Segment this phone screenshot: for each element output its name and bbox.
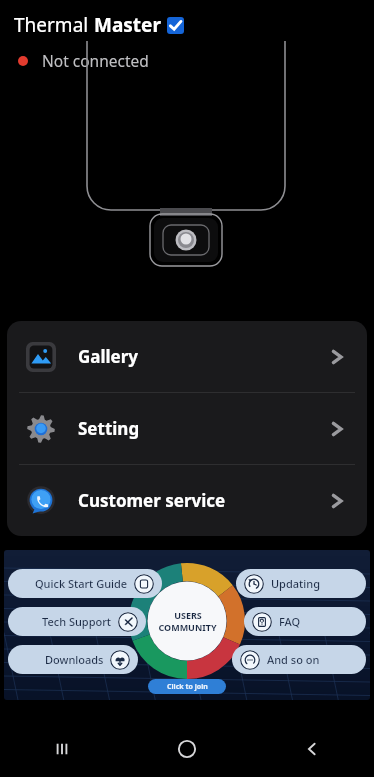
- button[interactable]: Home: [124, 721, 249, 777]
- button[interactable]: Setting: [7, 393, 367, 464]
- button[interactable]: Quick Start Guide: [8, 569, 162, 598]
- staticText: Quick Start Guide: [35, 576, 128, 591]
- button[interactable]: Customer service: [7, 465, 367, 536]
- staticText: Master: [94, 12, 161, 38]
- button[interactable]: Click to join: [148, 679, 226, 694]
- button[interactable]: Users community: [4, 550, 370, 700]
- staticText: Customer service: [78, 489, 226, 512]
- staticText: Tech Support: [42, 614, 112, 629]
- staticText: Not connected: [42, 50, 149, 71]
- button[interactable]: Updating: [236, 569, 366, 598]
- staticText: Downloads: [45, 652, 104, 667]
- button[interactable]: And so on: [232, 645, 366, 674]
- button[interactable]: Recents: [0, 721, 124, 777]
- button[interactable]: Gallery: [7, 321, 367, 392]
- staticText: Gallery: [78, 345, 139, 368]
- button[interactable]: FAQ: [244, 607, 366, 636]
- button[interactable]: Downloads: [8, 645, 138, 674]
- staticText: Thermal: [14, 12, 94, 38]
- staticText: Click to join: [167, 682, 208, 692]
- staticText: And so on: [267, 652, 320, 667]
- staticText: Setting: [78, 417, 140, 440]
- staticText: FAQ: [279, 614, 301, 629]
- staticText: COMMUNITY: [158, 621, 217, 633]
- staticText: USERS: [174, 609, 202, 621]
- staticText: Updating: [271, 576, 320, 591]
- button[interactable]: Back: [249, 721, 374, 777]
- button[interactable]: Tech Support: [8, 607, 146, 636]
